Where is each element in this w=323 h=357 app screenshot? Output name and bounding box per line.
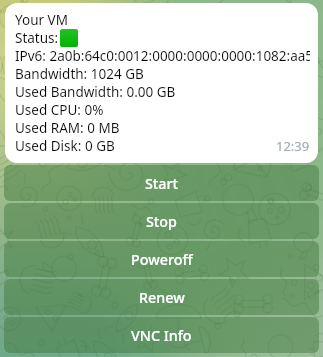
staticText: Bandwidth: 1024 GB [15,65,144,83]
staticText: Start [145,174,179,193]
button[interactable]: Renew [4,279,319,315]
button[interactable]: VNC Info [4,317,319,353]
staticText: Poweroff [131,250,193,269]
staticText: 12:39 [276,137,310,155]
staticText: VNC Info [131,326,192,345]
staticText: Stop [146,212,177,231]
button[interactable]: Start [4,165,319,201]
staticText: Used CPU: 0% [15,101,104,119]
staticText: Renew [139,288,185,307]
staticText: Your VM [15,11,68,29]
staticText: Used RAM: 0 MB [15,119,120,137]
staticText: IPv6: 2a0b:64c0:0012:0000:0000:0000:1082… [15,47,310,65]
button[interactable]: Stop [4,203,319,239]
staticText: Used Bandwidth: 0.00 GB [15,83,176,101]
staticText: Used Disk: 0 GB [15,137,115,155]
staticText: Status: [15,29,59,47]
button[interactable]: Poweroff [4,241,319,277]
